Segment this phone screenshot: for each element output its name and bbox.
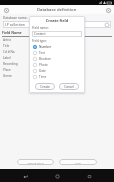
staticText: Genre — [3, 74, 57, 78]
staticText: Time — [39, 75, 47, 79]
staticText: Field Name — [2, 30, 57, 35]
staticText: Text — [57, 44, 112, 48]
staticText: Content — [34, 32, 46, 36]
staticText: Text — [57, 68, 112, 72]
button[interactable]: Number — [32, 44, 82, 50]
button[interactable]: Home — [52, 171, 62, 181]
button[interactable]: Photo — [32, 62, 82, 68]
button[interactable]: Settings — [104, 6, 112, 14]
button[interactable]: Place — [2, 67, 112, 73]
staticText: Boolean — [39, 57, 51, 61]
staticText: Field name: — [32, 26, 49, 30]
staticText: Artist — [3, 38, 57, 42]
staticText: Create field — [32, 18, 82, 23]
button[interactable]: Genre — [2, 73, 112, 79]
button[interactable]: Time — [32, 74, 82, 80]
staticText: SAVE — [75, 161, 81, 164]
button[interactable]: Content — [32, 31, 82, 37]
staticText: Field type: — [32, 39, 47, 43]
staticText: Text — [39, 51, 45, 55]
staticText: Cancel — [64, 85, 74, 89]
button[interactable]: CREATE FIELD — [17, 159, 54, 165]
staticText: Database name: — [3, 16, 28, 20]
button[interactable]: Cd # No — [2, 49, 112, 55]
staticText: Title — [3, 44, 57, 48]
button[interactable]: Boolean — [32, 56, 82, 62]
button[interactable]: Recents — [84, 171, 94, 181]
staticText: Cd # No — [3, 50, 57, 54]
staticText: Label — [3, 56, 57, 60]
staticText: Type — [57, 30, 112, 35]
button[interactable]: LP collection — [3, 21, 111, 28]
staticText: Database definition — [37, 7, 77, 13]
button[interactable]: Text — [32, 50, 82, 56]
button[interactable]: Menu — [2, 6, 10, 14]
button[interactable]: Date — [32, 68, 82, 74]
staticText: CREATE FIELD — [27, 161, 44, 164]
button[interactable]: Title — [2, 43, 112, 49]
staticText: Photo — [39, 63, 48, 67]
staticText: Text — [57, 56, 112, 60]
button[interactable]: Back — [20, 171, 30, 181]
staticText: LP collection — [5, 22, 25, 27]
button[interactable]: Label — [2, 55, 112, 61]
staticText: Number — [39, 45, 52, 49]
staticText: Text — [57, 38, 112, 42]
staticText: Date — [39, 69, 46, 73]
button[interactable]: Create — [35, 83, 55, 90]
button[interactable]: SAVE — [59, 159, 97, 165]
staticText: Place — [3, 68, 57, 72]
staticText: Text — [57, 74, 112, 78]
staticText: Number — [57, 50, 112, 54]
button[interactable]: Artist — [2, 37, 112, 43]
staticText: Date — [57, 62, 112, 66]
staticText: Recording — [3, 62, 57, 66]
button[interactable]: Recording — [2, 61, 112, 67]
staticText: Create — [40, 85, 50, 89]
button[interactable]: Cancel — [59, 83, 79, 90]
